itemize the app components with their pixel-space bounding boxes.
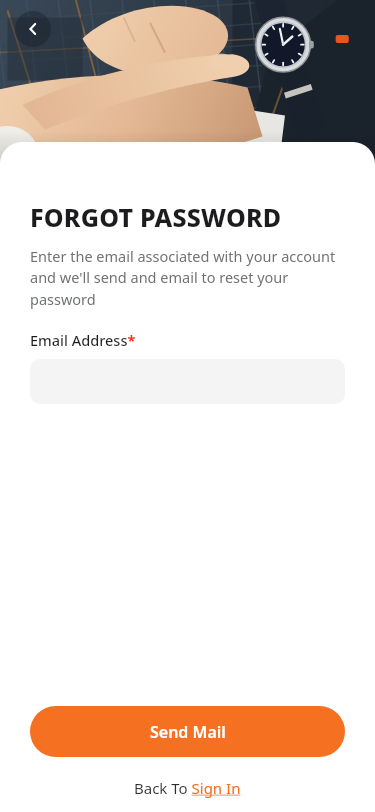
button[interactable]: Send Mail [30,706,345,757]
staticText: Send Mail [150,721,226,743]
staticText: FORGOT PASSWORD [30,200,282,234]
button[interactable]: Back To Sign In [134,778,241,798]
button[interactable]: Back [15,11,51,47]
staticText: Enter the email associated with your acc… [30,246,347,310]
staticText: Email Address* [30,330,136,350]
staticText: Back To Sign In [134,778,241,798]
